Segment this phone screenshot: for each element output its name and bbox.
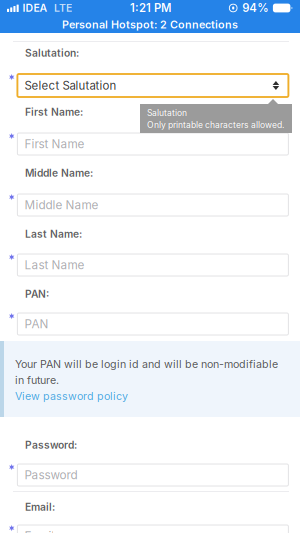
staticText: PAN: xyxy=(25,288,49,300)
staticText: Password xyxy=(24,468,77,482)
staticText: Last Name xyxy=(24,258,84,272)
button[interactable]: PAN xyxy=(17,313,288,335)
staticText: Salutation xyxy=(147,108,187,118)
button[interactable]: View password policy xyxy=(15,388,287,404)
staticText: Middle Name: xyxy=(25,167,93,179)
button[interactable]: Select Salutation xyxy=(17,74,288,97)
staticText: View password policy xyxy=(15,389,128,402)
staticText: First Name: xyxy=(25,106,83,118)
staticText: Only printable characters allowed. xyxy=(147,120,284,130)
staticText: PAN xyxy=(24,317,48,331)
staticText: IDEA xyxy=(23,2,48,14)
button[interactable]: Password xyxy=(17,464,288,486)
staticText: 94% xyxy=(242,1,268,15)
button[interactable]: Personal Hotspot: 2 Connections xyxy=(0,16,300,33)
button[interactable]: First Name xyxy=(17,133,288,155)
staticText: Your PAN will be login id and will be no… xyxy=(15,357,278,370)
staticText: LTE xyxy=(54,2,72,14)
staticText: 1:21 PM xyxy=(130,1,171,15)
staticText: in future. xyxy=(15,373,59,386)
staticText: Email xyxy=(24,529,54,533)
button[interactable]: Email xyxy=(17,525,288,533)
staticText: Salutation: xyxy=(25,47,79,59)
staticText: Password: xyxy=(25,439,77,451)
staticText: Middle Name xyxy=(24,198,98,212)
button[interactable]: Middle Name xyxy=(17,194,288,216)
staticText: Last Name: xyxy=(25,228,82,240)
button[interactable]: Last Name xyxy=(17,254,288,276)
staticText: Select Salutation xyxy=(24,79,116,92)
staticText: Personal Hotspot: 2 Connections xyxy=(62,18,238,31)
staticText: First Name xyxy=(24,137,84,151)
staticText: Email: xyxy=(25,501,55,513)
